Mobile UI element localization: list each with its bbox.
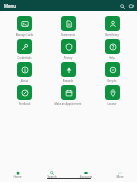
button[interactable]: Feedback (3, 85, 46, 106)
button[interactable]: Rewards (46, 62, 90, 83)
button[interactable]: Beneficiary (90, 16, 134, 37)
button[interactable]: Privacy (46, 39, 90, 60)
staticText: About (4, 79, 45, 83)
button[interactable]: Statements (46, 16, 90, 37)
button[interactable]: Credentials (3, 39, 46, 60)
staticText: Privacy (47, 56, 89, 60)
staticText: Statements (47, 33, 89, 37)
button[interactable]: Search (118, 2, 126, 10)
button[interactable]: About (3, 62, 46, 83)
button[interactable]: Home (0, 171, 35, 178)
staticText: Menu (4, 3, 17, 9)
staticText: Help (91, 56, 133, 60)
staticText: Feedback (4, 102, 45, 106)
button[interactable]: Manage Cards (3, 16, 46, 37)
button[interactable]: Search (35, 171, 69, 178)
staticText: Credentials (4, 56, 45, 60)
staticText: Make an Appointment (47, 102, 89, 106)
staticText: Recycle (91, 79, 133, 83)
button[interactable]: Recycle (90, 62, 134, 83)
staticText: Beneficiary (91, 33, 133, 37)
staticText: Rewards (47, 79, 89, 83)
staticText: Search (35, 175, 69, 178)
staticText: More (103, 175, 137, 178)
button[interactable]: Messages (127, 2, 135, 10)
button[interactable]: More (103, 171, 137, 178)
staticText: Manage Cards (4, 33, 45, 37)
staticText: Accounts (69, 175, 103, 178)
staticText: Locator (91, 102, 133, 106)
button[interactable]: Accounts (69, 171, 103, 178)
staticText: Home (0, 175, 35, 178)
button[interactable]: Locator (90, 85, 134, 106)
button[interactable]: Make an Appointment (46, 85, 90, 106)
button[interactable]: Help (90, 39, 134, 60)
